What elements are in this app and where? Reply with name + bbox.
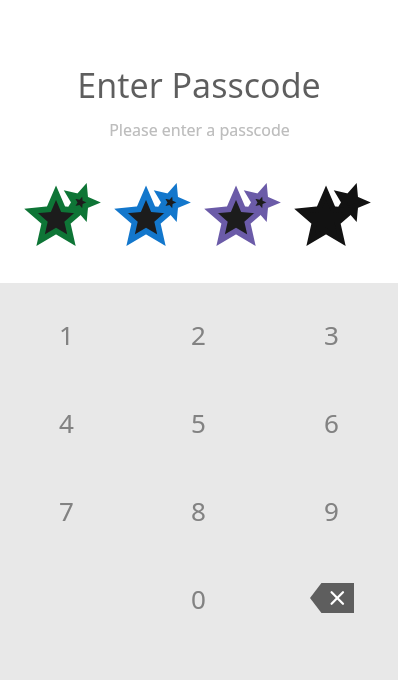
- staticText: Please enter a passcode: [109, 119, 290, 141]
- button[interactable]: 4: [0, 378, 132, 466]
- staticText: 2: [191, 317, 206, 352]
- staticText: 9: [324, 493, 339, 528]
- staticText: 3: [324, 317, 339, 352]
- staticText: 8: [191, 493, 206, 528]
- button[interactable]: 7: [0, 466, 132, 554]
- staticText: Enter Passcode: [77, 62, 321, 108]
- staticText: 7: [59, 493, 74, 528]
- button[interactable]: 3: [265, 290, 398, 378]
- button[interactable]: 8: [132, 466, 265, 554]
- staticText: 5: [191, 405, 206, 440]
- staticText: 4: [59, 405, 74, 440]
- staticText: 6: [324, 405, 339, 440]
- button[interactable]: 6: [265, 378, 398, 466]
- button[interactable]: 2: [132, 290, 265, 378]
- staticText: 0: [191, 581, 206, 616]
- button[interactable]: 1: [0, 290, 132, 378]
- button[interactable]: 0: [132, 554, 265, 642]
- button[interactable]: Delete: [265, 554, 398, 642]
- staticText: 1: [59, 317, 74, 352]
- button[interactable]: 5: [132, 378, 265, 466]
- button[interactable]: 9: [265, 466, 398, 554]
